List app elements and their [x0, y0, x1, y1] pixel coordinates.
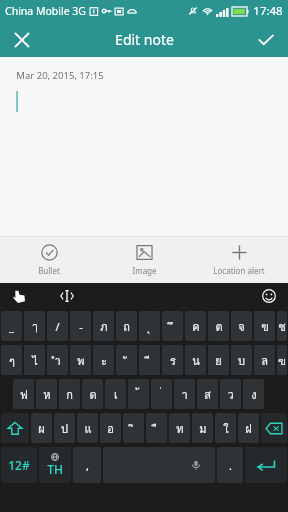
button[interactable]: ก	[59, 379, 80, 409]
button[interactable]: า	[174, 379, 195, 409]
button[interactable]: ้	[128, 379, 149, 409]
staticText: 12#	[8, 457, 30, 473]
button[interactable]: พ	[70, 345, 91, 375]
button[interactable]: ถ	[116, 311, 137, 341]
button[interactable]: ห	[36, 379, 57, 409]
button[interactable]: Save	[244, 22, 288, 57]
button[interactable]: ไ	[24, 345, 45, 375]
button[interactable]: อ	[100, 413, 121, 443]
staticText: ๅ	[32, 318, 38, 335]
staticText: ะ	[101, 352, 107, 369]
staticText: ด	[89, 386, 97, 403]
button[interactable]: ม	[192, 413, 213, 443]
button[interactable]: TH	[39, 447, 71, 483]
staticText: ท	[176, 420, 184, 437]
button[interactable]: ฝ	[238, 413, 259, 443]
button[interactable]: ร	[162, 345, 183, 375]
staticText: ม	[199, 420, 207, 437]
button[interactable]: ๅ	[24, 311, 45, 341]
button[interactable]: ต	[208, 311, 229, 341]
button[interactable]: Close	[0, 22, 44, 57]
staticText: า	[181, 386, 188, 403]
staticText: ฝ	[245, 420, 252, 437]
button[interactable]: ผ	[31, 413, 52, 443]
button[interactable]: ึ	[162, 311, 183, 341]
button[interactable]: /	[47, 311, 68, 341]
staticText: อ	[107, 420, 114, 437]
button[interactable]: Location alert	[193, 237, 285, 283]
button[interactable]: จ	[231, 311, 252, 341]
button[interactable]: ิ	[123, 413, 144, 443]
staticText: ๆ	[9, 352, 15, 369]
staticText: ภ	[100, 318, 108, 335]
staticText: ร	[170, 352, 176, 369]
button[interactable]: ช	[277, 311, 287, 341]
staticText: ,	[86, 458, 89, 473]
button[interactable]: ฟ	[13, 379, 34, 409]
staticText: _	[9, 319, 14, 334]
button[interactable]: Emoji	[260, 287, 278, 305]
staticText: ต	[215, 318, 223, 335]
staticText: ห	[43, 386, 51, 403]
button[interactable]: ข	[254, 311, 275, 341]
button[interactable]: -	[70, 311, 91, 341]
button[interactable]: Select text	[58, 287, 76, 305]
button[interactable]: Key	[261, 413, 287, 443]
button[interactable]: Space	[103, 447, 215, 483]
button[interactable]: ท	[169, 413, 190, 443]
button[interactable]: ่	[151, 379, 172, 409]
staticText: ไ	[32, 352, 38, 369]
staticText: ว	[227, 386, 234, 403]
button[interactable]: ย	[208, 345, 229, 375]
staticText: Edit note	[115, 30, 174, 49]
button[interactable]: ด	[82, 379, 103, 409]
button[interactable]: เ	[105, 379, 126, 409]
button[interactable]: ว	[220, 379, 241, 409]
button[interactable]: Cursor control	[10, 287, 28, 305]
staticText: ถ	[123, 318, 130, 335]
staticText: ฟ	[20, 386, 28, 403]
button[interactable]: ,	[73, 447, 101, 483]
button[interactable]: ง	[243, 379, 264, 409]
staticText: ใ	[223, 420, 229, 437]
button[interactable]: ค	[185, 311, 206, 341]
button[interactable]: ฃ	[277, 345, 287, 375]
staticText: Location alert	[213, 265, 265, 276]
staticText: พ	[77, 352, 85, 369]
staticText: แ	[84, 420, 92, 437]
button[interactable]: Enter	[245, 447, 287, 483]
button[interactable]: ี	[139, 345, 160, 375]
button[interactable]: ภ	[93, 311, 114, 341]
button[interactable]: บ	[231, 345, 252, 375]
staticText: 17:48	[253, 3, 283, 19]
button[interactable]: _	[1, 311, 22, 341]
staticText: ล	[261, 352, 268, 369]
button[interactable]: ะ	[93, 345, 114, 375]
staticText: ก	[66, 386, 73, 403]
button[interactable]: Image	[98, 237, 190, 283]
button[interactable]: ป	[54, 413, 75, 443]
button[interactable]: Key	[1, 413, 29, 443]
button[interactable]: ื	[146, 413, 167, 443]
staticText: .	[229, 458, 232, 473]
staticText: TH	[47, 461, 63, 477]
button[interactable]: ล	[254, 345, 275, 375]
button[interactable]: 12#	[1, 447, 37, 483]
button[interactable]: ใ	[215, 413, 236, 443]
button[interactable]: แ	[77, 413, 98, 443]
staticText: Image	[132, 265, 157, 276]
button[interactable]: Bullet	[3, 237, 95, 283]
staticText: ป	[61, 420, 68, 437]
button[interactable]: .	[217, 447, 243, 483]
button[interactable]: Mar 20, 2015, 17:15	[0, 57, 288, 236]
button[interactable]: ำ	[47, 345, 68, 375]
staticText: ส	[204, 386, 211, 403]
button[interactable]: ๆ	[1, 345, 22, 375]
staticText: ข	[261, 318, 269, 335]
staticText: ฃ	[278, 352, 286, 369]
button[interactable]: ั	[116, 345, 137, 375]
staticText: China Mobile 3G	[5, 4, 86, 18]
button[interactable]: ส	[197, 379, 218, 409]
button[interactable]: น	[185, 345, 206, 375]
button[interactable]: ุ	[139, 311, 160, 341]
